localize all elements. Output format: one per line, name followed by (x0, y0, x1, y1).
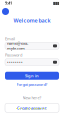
staticText: New here? (22, 95, 41, 100)
staticText: 9:41 (5, 0, 12, 6)
button[interactable]: Create account (5, 103, 59, 112)
staticText: Create account (17, 105, 47, 110)
staticText: Forgot password? (16, 82, 47, 87)
staticText: name@example.com (7, 41, 28, 51)
staticText: Welcome back (13, 17, 50, 24)
staticText: ▮▮▮ (53, 1, 59, 5)
button[interactable]: Forgot password? (16, 82, 47, 87)
staticText: Password (5, 52, 22, 58)
staticText: Sign in (25, 73, 39, 78)
staticText: •••••••• (7, 60, 23, 65)
button[interactable]: Sign in (5, 72, 59, 80)
staticText: Email (5, 36, 15, 41)
